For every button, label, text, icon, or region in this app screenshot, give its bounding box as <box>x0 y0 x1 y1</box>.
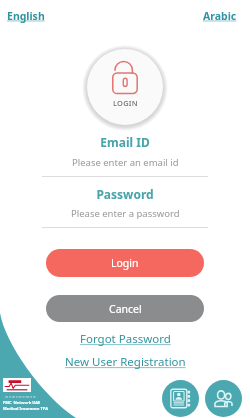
staticText: Medical Insurance TPA <box>3 406 48 411</box>
staticText: Please enter an email id <box>72 156 179 169</box>
button[interactable]: Login <box>46 249 204 277</box>
staticText: New User Registration <box>65 354 186 370</box>
staticText: LOGIN <box>113 98 138 108</box>
staticText: Login <box>111 256 139 270</box>
staticText: FMC Network UAE <box>3 400 41 405</box>
button[interactable]: Arabic <box>198 6 242 26</box>
button[interactable]: Cancel <box>46 295 204 322</box>
staticText: Arabic <box>203 9 237 23</box>
staticText: Password <box>0 186 250 202</box>
staticText: Please enter a password <box>71 207 180 220</box>
staticText: Forgot Password <box>80 331 171 347</box>
button[interactable]: Please enter an email id <box>0 156 250 169</box>
button[interactable]: Please enter a password <box>0 207 250 220</box>
staticText: Email ID <box>0 134 250 150</box>
staticText: English <box>7 9 45 23</box>
button[interactable]: Members <box>205 380 242 417</box>
button[interactable]: New User Registration <box>61 352 190 372</box>
staticText: Cancel <box>109 302 142 316</box>
button[interactable]: English <box>2 6 50 26</box>
button[interactable]: Forgot Password <box>76 329 175 349</box>
button[interactable]: Provider directory <box>162 380 199 417</box>
